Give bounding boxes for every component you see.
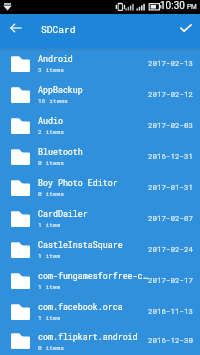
staticText: 1 item <box>38 314 61 322</box>
staticText: PM <box>187 3 197 11</box>
staticText: Audio <box>38 115 63 126</box>
staticText: 2017-01-31 <box>148 182 194 192</box>
staticText: 2017-02-03 <box>148 120 194 130</box>
button[interactable]: Boy Photo Editor <box>0 172 200 203</box>
button[interactable]: com.flipkart.android <box>0 327 200 355</box>
button[interactable]: Android <box>0 48 200 79</box>
button[interactable]: Audio <box>0 110 200 141</box>
staticText: 2 items <box>38 128 64 136</box>
staticText: com.facebook.orca <box>38 301 123 312</box>
staticText: 2016-12-30 <box>148 335 194 345</box>
staticText: 1 item <box>38 221 61 229</box>
button[interactable]: Back <box>0 13 30 43</box>
button[interactable]: CastleInstaSquare <box>0 234 200 265</box>
staticText: 10:30 <box>160 0 185 12</box>
button[interactable]: com-fungamesforfree-c… <box>0 265 200 296</box>
staticText: Boy Photo Editor <box>38 177 118 188</box>
staticText: 0 items <box>38 190 64 198</box>
staticText: 3 items <box>38 66 64 74</box>
staticText: 0 items <box>38 344 64 352</box>
staticText: 16 items <box>38 97 68 105</box>
staticText: 2017-02-17 <box>148 275 194 285</box>
button[interactable]: Bluetooth <box>0 141 200 172</box>
staticText: 1 item <box>38 252 61 260</box>
staticText: CastleInstaSquare <box>38 239 123 250</box>
staticText: SDCard <box>41 23 76 36</box>
staticText: CardDailer <box>38 208 88 219</box>
staticText: Bluetooth <box>38 146 83 157</box>
button[interactable]: AppBackup <box>0 79 200 110</box>
staticText: Android <box>38 53 73 64</box>
staticText: com.flipkart.android <box>38 331 138 342</box>
staticText: 2017-02-24 <box>148 244 194 254</box>
staticText: com-fungamesforfree-c… <box>38 270 148 281</box>
button[interactable]: CardDailer <box>0 203 200 234</box>
staticText: 2017-02-07 <box>148 213 194 223</box>
staticText: 2016-11-13 <box>148 306 194 316</box>
staticText: AppBackup <box>38 84 83 95</box>
staticText: 2016-12-31 <box>148 151 194 161</box>
button[interactable]: com.facebook.orca <box>0 296 200 327</box>
button[interactable]: Confirm <box>171 13 200 43</box>
staticText: 0 items <box>38 159 64 167</box>
staticText: 2017-02-12 <box>148 89 194 99</box>
staticText: 1 item <box>38 283 61 291</box>
staticText: 2017-02-13 <box>148 58 194 68</box>
